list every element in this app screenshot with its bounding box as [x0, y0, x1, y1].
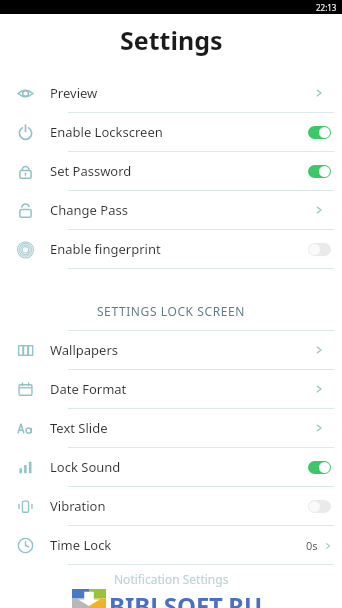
button[interactable]: Set Password: [0, 152, 342, 191]
staticText: 0s: [306, 538, 318, 553]
button[interactable]: Date Format: [0, 370, 342, 409]
staticText: Settings: [120, 23, 223, 57]
staticText: Change Pass: [50, 201, 296, 219]
staticText: Enable Lockscreen: [50, 123, 296, 141]
button[interactable]: Enable Lockscreen: [0, 113, 342, 152]
staticText: Wallpapers: [50, 341, 296, 359]
button[interactable]: Lock Sound: [0, 448, 342, 487]
staticText: Vibration: [50, 497, 296, 515]
staticText: Preview: [50, 84, 296, 102]
staticText: Text Slide: [50, 419, 296, 437]
button[interactable]: Text Slide: [0, 409, 342, 448]
staticText: Time Lock: [50, 536, 296, 554]
staticText: Date Format: [50, 380, 296, 398]
staticText: 22:13: [316, 2, 337, 13]
button[interactable]: Vibration: [0, 487, 342, 526]
staticText: Set Password: [50, 162, 296, 180]
button[interactable]: Change Pass: [0, 191, 342, 230]
staticText: SETTINGS LOCK SCREEN: [0, 303, 342, 319]
staticText: Lock Sound: [50, 458, 296, 476]
staticText: BIBLSOFT.RU: [109, 589, 263, 608]
button[interactable]: Preview: [0, 74, 342, 113]
button[interactable]: Wallpapers: [0, 331, 342, 370]
button[interactable]: Time Lock: [0, 526, 342, 565]
staticText: Enable fingerprint: [50, 240, 296, 258]
button[interactable]: Enable fingerprint: [0, 230, 342, 269]
staticText: Notification Settings: [114, 571, 229, 587]
